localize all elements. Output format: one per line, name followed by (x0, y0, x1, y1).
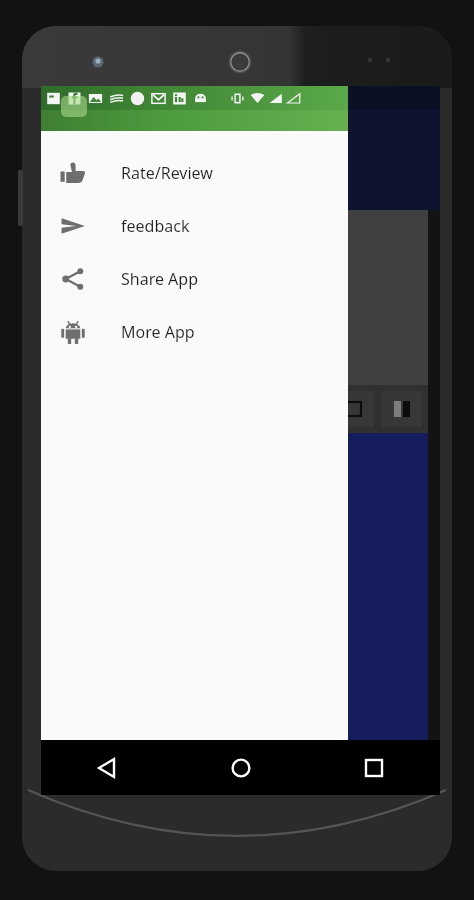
staticText: e (237, 731, 260, 785)
button[interactable]: More App (41, 305, 348, 358)
button[interactable]: Recent apps (307, 740, 440, 795)
button[interactable]: Home (174, 740, 307, 795)
button[interactable]: feedback (41, 199, 348, 252)
staticText: More App (121, 321, 195, 343)
button[interactable]: Share App (41, 252, 348, 305)
staticText: Rate/Review (121, 162, 213, 184)
button[interactable]: Single page view (334, 391, 374, 427)
button[interactable]: Rate/Review (41, 146, 348, 199)
staticText: feedback (121, 215, 190, 237)
staticText: Share App (121, 268, 199, 290)
button[interactable]: Back (41, 740, 174, 795)
button[interactable]: Two page view (382, 391, 422, 427)
